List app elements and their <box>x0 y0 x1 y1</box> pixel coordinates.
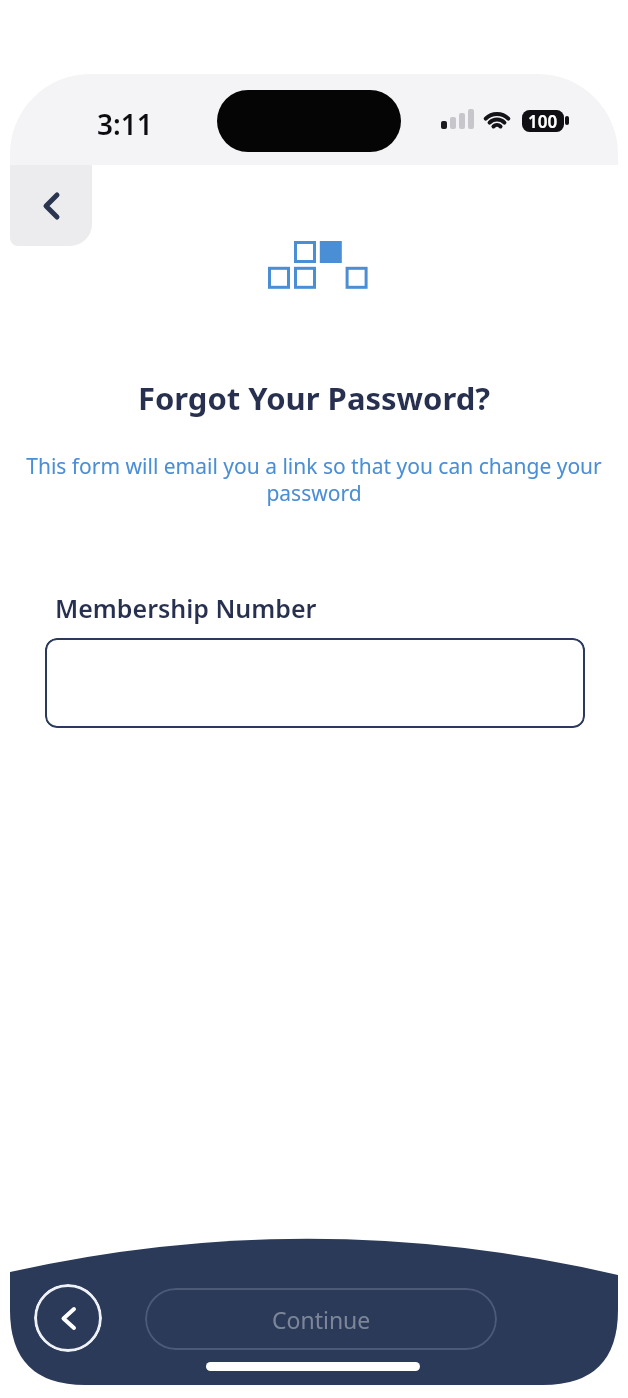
staticText: 3:11 <box>97 105 153 143</box>
button[interactable]: Continue <box>145 1288 497 1350</box>
staticText: Forgot Your Password? <box>0 377 628 419</box>
staticText: Membership Number <box>55 591 317 625</box>
button[interactable] <box>10 165 92 246</box>
staticText: 100 <box>528 110 558 132</box>
button[interactable] <box>45 638 585 728</box>
staticText: This form will email you a link so that … <box>0 452 628 481</box>
staticText: password <box>0 479 628 508</box>
staticText: Continue <box>272 1304 371 1335</box>
button[interactable] <box>34 1284 102 1352</box>
